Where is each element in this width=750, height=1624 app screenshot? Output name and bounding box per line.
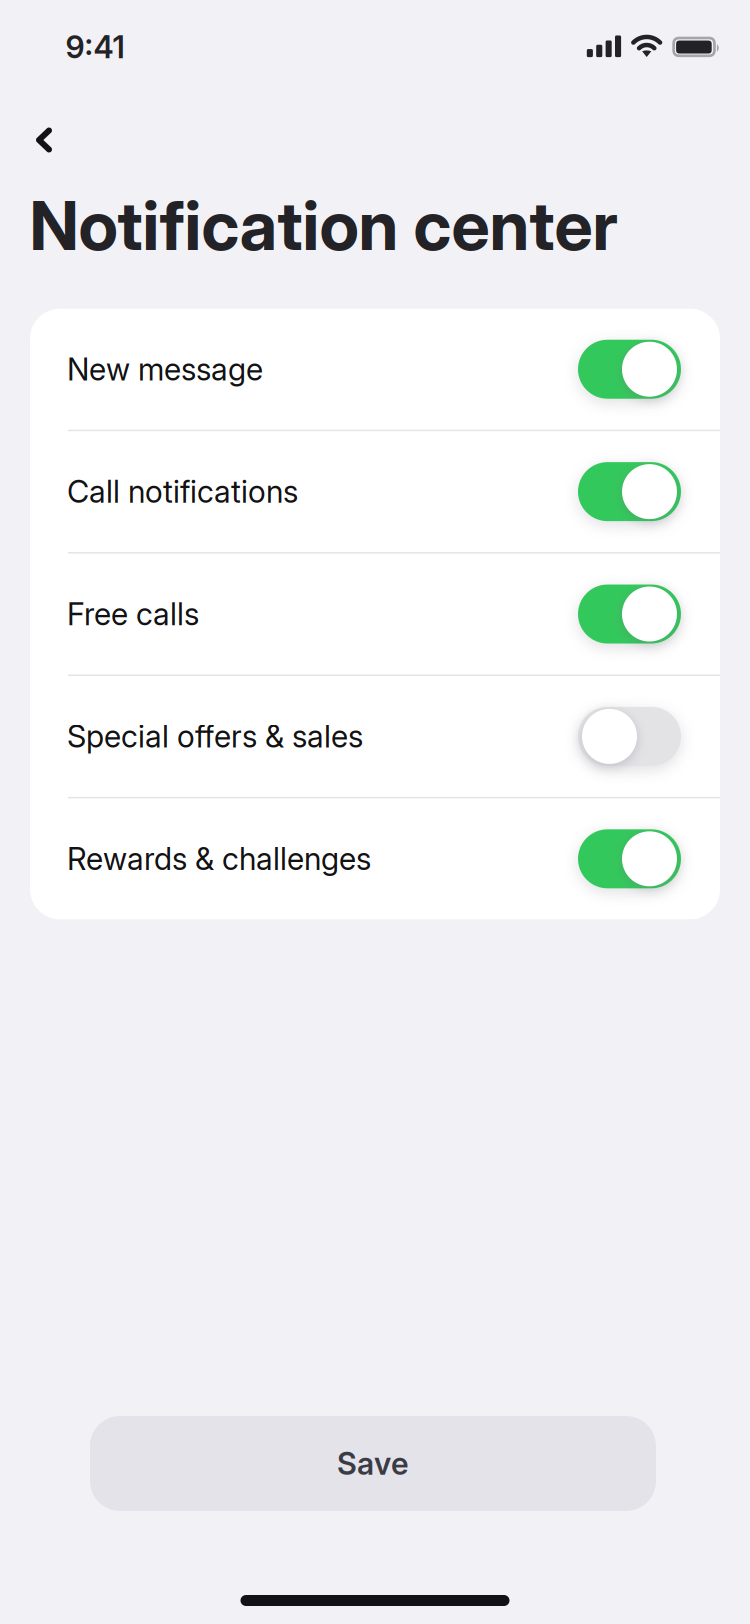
button[interactable]: New message [30, 309, 720, 430]
staticText: Save [337, 1445, 409, 1482]
button[interactable]: Special offers & sales [30, 676, 720, 797]
staticText: Free calls [67, 595, 199, 633]
staticText: Special offers & sales [67, 718, 363, 755]
button[interactable]: Call notifications [30, 431, 720, 552]
button[interactable]: Rewards & challenges [30, 798, 720, 919]
button[interactable]: Save [90, 1416, 656, 1511]
staticText: New message [67, 351, 263, 388]
staticText: 9:41 [65, 29, 124, 66]
staticText: Call notifications [67, 473, 298, 510]
button[interactable]: Free calls [30, 554, 720, 674]
button[interactable]: Back [13, 109, 75, 171]
staticText: Rewards & challenges [67, 840, 371, 877]
staticText: Notification center [29, 184, 617, 266]
